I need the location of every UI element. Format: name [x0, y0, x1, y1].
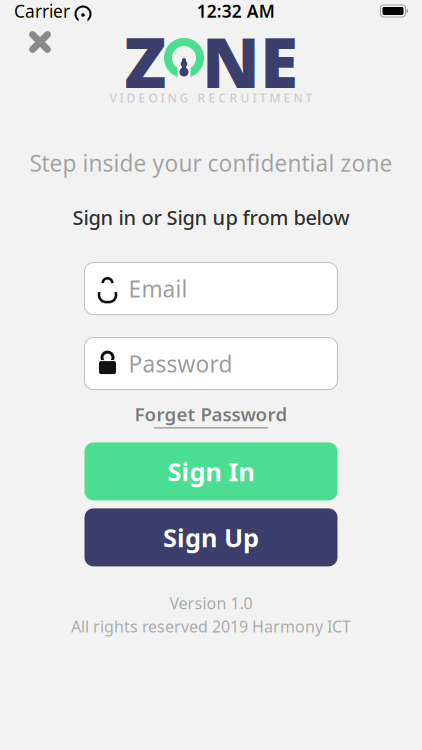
staticText: All rights reserved 2019 Harmony ICT — [71, 616, 351, 637]
staticText: Z — [124, 15, 166, 107]
button[interactable]: Sign In — [84, 442, 337, 500]
staticText: Password — [128, 348, 232, 379]
button[interactable]: Forget Password — [134, 402, 287, 428]
staticText: NE — [202, 15, 298, 107]
staticText: V I D E O I N G R E C R U I T M E N T — [109, 90, 312, 106]
staticText: Email — [128, 273, 187, 304]
staticText: Sign In — [167, 455, 254, 488]
button[interactable]: Sign Up — [84, 508, 337, 566]
staticText: Carrier — [14, 0, 70, 22]
staticText: Forget Password — [134, 402, 287, 426]
button[interactable]: Close — [18, 20, 62, 64]
staticText: Step inside your confidential zone — [29, 148, 392, 178]
staticText: 12:32 AM — [197, 0, 275, 22]
staticText: Version 1.0 — [169, 592, 252, 614]
staticText: Sign Up — [163, 521, 259, 554]
staticText: Sign in or Sign up from below — [72, 204, 349, 231]
